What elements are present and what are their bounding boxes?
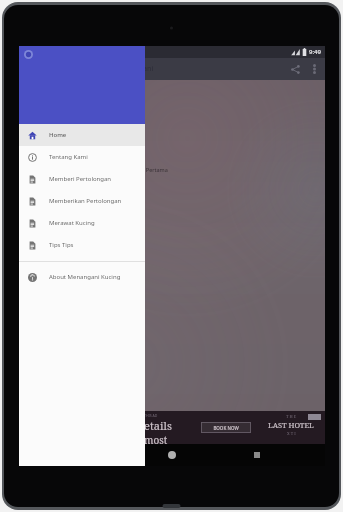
staticText: n Pertama: [141, 166, 168, 173]
staticText: etails: [144, 418, 172, 433]
button[interactable]: Merawat Kucing: [19, 212, 145, 234]
button[interactable]: Home: [19, 124, 145, 146]
button[interactable]: Tips Tips: [19, 234, 145, 256]
staticText: Home: [49, 131, 67, 139]
button[interactable]: More options: [305, 60, 323, 78]
button[interactable]: Memberikan Pertolongan: [19, 190, 145, 212]
staticText: THIS AD: [144, 413, 158, 418]
button[interactable]: THIS AD: [19, 411, 325, 444]
staticText: T H E: [286, 414, 297, 419]
button[interactable]: Share: [285, 59, 305, 79]
staticText: BOOK NOW: [213, 425, 239, 431]
staticText: 9:49: [309, 48, 321, 56]
staticText: ani: [143, 64, 154, 74]
staticText: About Menangani Kucing: [49, 273, 121, 281]
button[interactable]: Home: [155, 444, 189, 466]
staticText: most: [144, 433, 168, 446]
staticText: Memberikan Pertolongan: [49, 197, 122, 205]
staticText: Tentang Kami: [49, 153, 88, 161]
button[interactable]: [19, 46, 145, 124]
button[interactable]: Memberi Pertolongan: [19, 168, 145, 190]
staticText: Tips Tips: [49, 241, 74, 249]
button[interactable]: BOOK NOW: [201, 422, 251, 433]
button[interactable]: About Menangani Kucing: [19, 266, 145, 288]
staticText: Memberi Pertolongan: [49, 175, 112, 183]
staticText: X T I: [287, 431, 296, 436]
staticText: LAST HOTEL: [268, 420, 314, 430]
button[interactable]: Tentang Kami: [19, 146, 145, 168]
staticText: Merawat Kucing: [49, 219, 95, 227]
button[interactable]: Recent apps: [240, 444, 274, 466]
